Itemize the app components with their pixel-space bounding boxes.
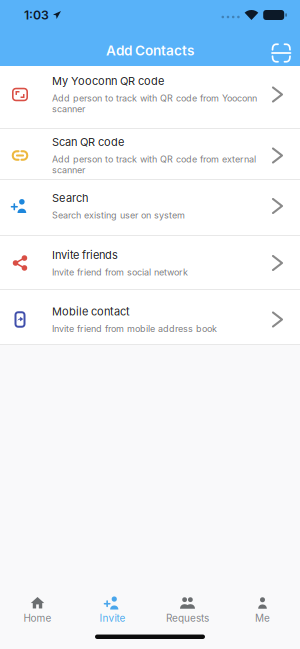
staticText: Invite friends xyxy=(52,248,118,262)
staticText: Invite friend from mobile address book xyxy=(52,323,217,334)
staticText: My Yooconn QR code xyxy=(52,74,164,88)
staticText: Invite xyxy=(99,612,125,624)
staticText: scanner xyxy=(52,104,85,115)
staticText: Add person to track with QR code from Yo… xyxy=(52,93,257,104)
button[interactable]: Home xyxy=(0,597,75,624)
button[interactable]: Scan QR code xyxy=(0,129,300,179)
button[interactable]: Me xyxy=(225,597,300,624)
button[interactable]: Invite friends xyxy=(0,236,300,289)
staticText: Home xyxy=(23,612,51,624)
staticText: 1:03 xyxy=(24,8,49,22)
button[interactable]: Invite xyxy=(75,597,150,624)
staticText: Scan QR code xyxy=(52,135,124,149)
button[interactable]: Requests xyxy=(150,597,225,624)
staticText: Me xyxy=(255,612,270,624)
staticText: Search existing user on system xyxy=(52,210,185,221)
staticText: Search xyxy=(52,191,89,205)
button[interactable]: Search xyxy=(0,180,300,235)
staticText: Add person to track with QR code from ex… xyxy=(52,154,256,165)
button[interactable]: Mobile contact xyxy=(0,290,300,344)
button[interactable]: My Yooconn QR code xyxy=(0,66,300,128)
staticText: scanner xyxy=(52,165,85,176)
staticText: Requests xyxy=(166,612,209,624)
staticText: Invite friend from social network xyxy=(52,267,188,278)
staticText: Add Contacts xyxy=(106,42,194,59)
staticText: Mobile contact xyxy=(52,305,130,318)
button[interactable]: Scan xyxy=(272,34,300,62)
